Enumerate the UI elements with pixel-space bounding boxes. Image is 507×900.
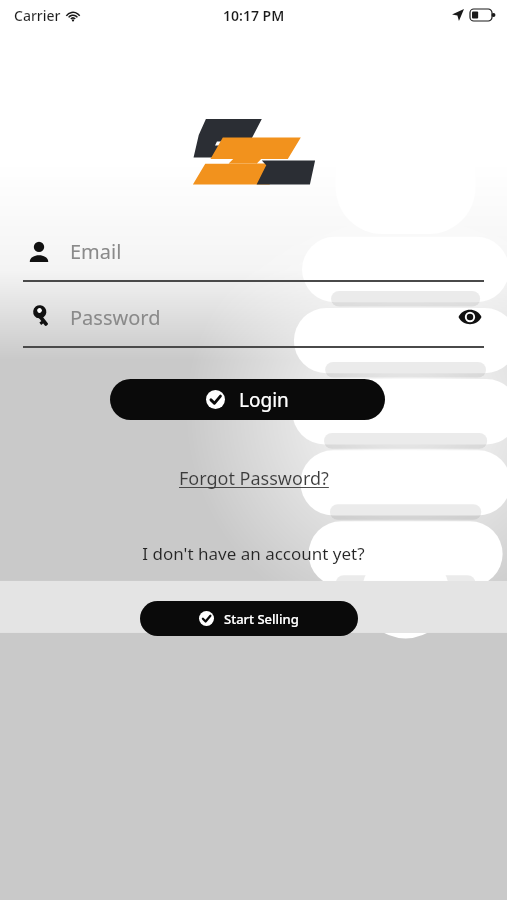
button[interactable]: Forgot Password? <box>171 462 337 495</box>
staticText: Carrier <box>14 6 61 25</box>
staticText: Forgot Password? <box>179 466 329 491</box>
staticText: Login <box>239 387 289 413</box>
staticText: Start Selling <box>224 610 299 628</box>
staticText: I don't have an account yet? <box>142 542 365 565</box>
button[interactable]: Start Selling <box>140 601 358 636</box>
button[interactable]: Email <box>0 220 507 282</box>
button[interactable]: Show password <box>453 300 487 334</box>
staticText: Password <box>70 304 161 331</box>
button[interactable]: Password <box>0 286 507 348</box>
staticText: 10:17 PM <box>223 6 285 25</box>
button[interactable]: Login <box>110 379 385 420</box>
staticText: Email <box>70 238 122 265</box>
button[interactable]: I don't have an account yet? <box>0 527 507 579</box>
